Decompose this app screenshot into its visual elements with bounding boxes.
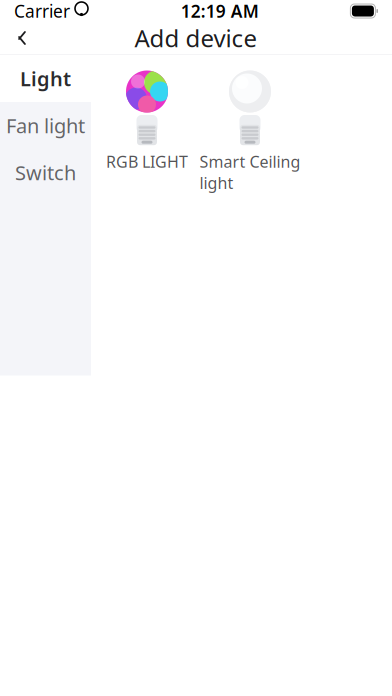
staticText: RGB LIGHT: [106, 151, 188, 172]
staticText: Light: [20, 65, 71, 92]
staticText: Add device: [134, 22, 257, 54]
staticText: Switch: [15, 159, 76, 186]
button[interactable]: Light: [0, 55, 91, 102]
button[interactable]: Smart Ceiling light: [195, 63, 305, 193]
button[interactable]: Fan light: [0, 102, 91, 149]
staticText: 12:19 AM: [181, 0, 259, 22]
staticText: Carrier: [14, 0, 70, 22]
button[interactable]: Switch: [0, 149, 91, 196]
staticText: Fan light: [6, 112, 85, 139]
staticText: Smart Ceiling light: [199, 151, 300, 193]
button[interactable]: RGB LIGHT: [99, 63, 195, 172]
button[interactable]: Back: [0, 22, 44, 54]
